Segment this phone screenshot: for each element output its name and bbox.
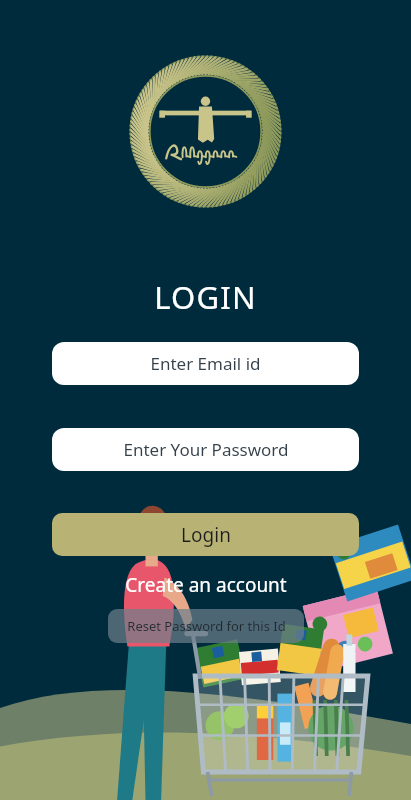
staticText: Reset Password for this Id xyxy=(127,617,286,635)
button[interactable]: Enter Your Password xyxy=(52,428,359,471)
button[interactable]: Create an account xyxy=(117,570,295,600)
button[interactable]: Login xyxy=(52,513,359,556)
staticText: Enter Your Password xyxy=(123,438,289,461)
staticText: LOGIN xyxy=(154,276,257,318)
staticText: Enter Email id xyxy=(150,352,261,375)
staticText: Login xyxy=(181,522,231,548)
button[interactable]: Enter Email id xyxy=(52,342,359,385)
staticText: Create an account xyxy=(125,572,287,598)
button[interactable]: Reset Password for this Id xyxy=(108,609,304,643)
